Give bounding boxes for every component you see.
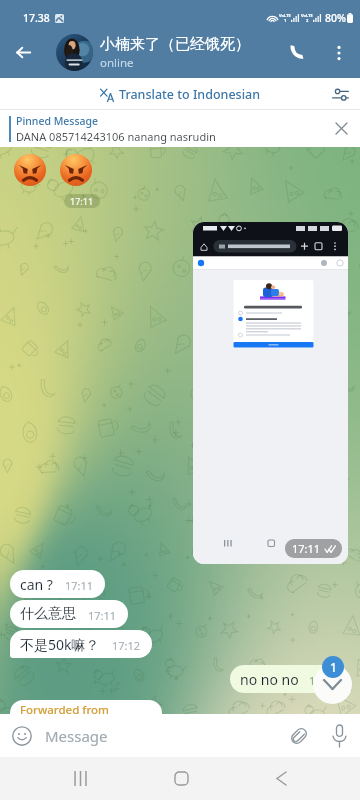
- button[interactable]: can ?: [10, 570, 105, 598]
- staticText: DANA 085714243106 nanang nasrudin: [16, 129, 216, 144]
- button[interactable]: Close pinned message: [322, 110, 360, 147]
- staticText: 17:11: [88, 608, 117, 623]
- button[interactable]: Back: [254, 757, 308, 800]
- button[interactable]: Call: [276, 27, 318, 78]
- staticText: Forwarded from: [20, 702, 109, 716]
- staticText: 17:12: [309, 673, 338, 688]
- staticText: 17:11: [292, 541, 321, 556]
- staticText: 2: [306, 18, 309, 23]
- staticText: online: [100, 55, 134, 71]
- staticText: 1: [284, 18, 287, 23]
- staticText: no no no: [240, 670, 299, 689]
- button[interactable]: 什么意思: [10, 600, 128, 628]
- button[interactable]: Attach file: [280, 714, 317, 757]
- staticText: VoLTE: [279, 13, 291, 18]
- button[interactable]: Back: [0, 27, 47, 78]
- button[interactable]: no no no: [230, 665, 349, 693]
- staticText: 17:11: [65, 578, 94, 593]
- staticText: 什么意思: [20, 605, 76, 623]
- button[interactable]: Record voice message: [321, 714, 358, 757]
- staticText: Pinned Message: [16, 114, 99, 128]
- button[interactable]: Scroll to bottom: [313, 665, 352, 704]
- button[interactable]: Recent apps: [53, 757, 107, 800]
- button[interactable]: Emoji: [0, 714, 44, 757]
- staticText: 小楠来了（已经饿死）: [100, 35, 250, 54]
- staticText: 17.38: [23, 11, 50, 25]
- staticText: 1: [330, 659, 337, 675]
- staticText: Translate to Indonesian: [119, 86, 261, 103]
- button[interactable]: Profile photo: [56, 34, 93, 71]
- button[interactable]: 不是50k嘛？: [10, 630, 152, 658]
- staticText: 17:12: [112, 638, 141, 653]
- button[interactable]: Photo message: [193, 222, 348, 564]
- staticText: can ?: [20, 575, 53, 594]
- button[interactable]: Translate to Indonesian: [94, 82, 267, 107]
- staticText: Message: [45, 726, 108, 746]
- staticText: 80%: [325, 11, 346, 25]
- button[interactable]: Translation settings: [320, 78, 360, 110]
- button[interactable]: Home: [154, 757, 208, 800]
- staticText: VoLTE: [301, 13, 313, 18]
- staticText: 不是50k嘛？: [20, 635, 100, 654]
- staticText: 17:11: [70, 195, 94, 207]
- button[interactable]: More options: [318, 27, 360, 78]
